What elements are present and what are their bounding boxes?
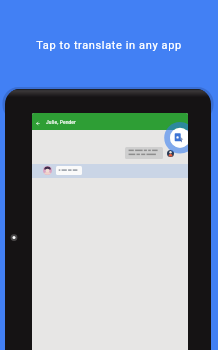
staticText: Tap to translate in any app <box>0 39 218 52</box>
other: Back <box>35 121 40 126</box>
button[interactable] <box>32 164 188 178</box>
button[interactable]: Back <box>32 113 188 130</box>
button[interactable]: Tap to translate <box>170 128 188 148</box>
staticText: Julie, Pender <box>46 119 76 125</box>
